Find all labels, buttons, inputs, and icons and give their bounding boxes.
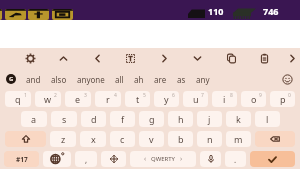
button[interactable]: Gboard menu (0, 69, 21, 89)
button[interactable]: Cursor control (101, 151, 126, 167)
button[interactable]: r (95, 91, 121, 107)
button[interactable]: b (168, 131, 193, 147)
staticText: i (223, 93, 226, 105)
button[interactable]: Backspace (255, 131, 295, 147)
button[interactable]: k (226, 111, 251, 127)
button[interactable]: u (183, 91, 208, 107)
staticText: G (9, 75, 14, 83)
staticText: 9 (259, 92, 262, 99)
button[interactable]: all (110, 69, 129, 89)
button[interactable]: m (226, 131, 251, 147)
staticText: 6 (172, 92, 175, 99)
button[interactable]: p (270, 91, 295, 107)
staticText: 3 (84, 92, 87, 99)
staticText: u (193, 93, 199, 105)
button[interactable]: Clipboard (247, 48, 281, 69)
staticText: › (180, 154, 183, 164)
staticText: t (136, 93, 140, 105)
staticText: d (91, 113, 97, 125)
staticText: anyone (77, 74, 105, 85)
button[interactable]: ah (129, 69, 149, 89)
staticText: ah (134, 74, 144, 85)
button[interactable]: x (80, 131, 106, 147)
staticText: a (31, 113, 37, 125)
button[interactable]: d (81, 111, 106, 127)
button[interactable]: n (197, 131, 222, 147)
staticText: 7 (201, 92, 204, 99)
button[interactable]: Inventory slot (5, 9, 26, 20)
staticText: z (61, 133, 66, 145)
staticText: y (164, 93, 169, 105)
button[interactable]: l (255, 111, 280, 127)
staticText: as (177, 74, 186, 85)
staticText: QWERTY (151, 155, 176, 163)
staticText: 2 (54, 92, 57, 99)
staticText: also (51, 74, 67, 85)
button[interactable]: Move cursor right (147, 48, 181, 69)
button[interactable]: t (125, 91, 150, 107)
button[interactable]: Copy (214, 48, 248, 69)
button[interactable]: Inventory slot (28, 9, 49, 20)
staticText: q (15, 93, 21, 105)
button[interactable]: as (172, 69, 191, 89)
staticText: c (120, 133, 125, 145)
staticText: 0 (288, 92, 291, 99)
button[interactable]: q (5, 91, 31, 107)
button[interactable]: ‹ (130, 151, 196, 167)
button[interactable]: f (110, 111, 135, 127)
staticText: #17 (16, 155, 28, 164)
button[interactable]: , (75, 151, 97, 167)
button[interactable]: More tools (285, 48, 300, 69)
button[interactable]: Text editing (113, 48, 147, 69)
button[interactable]: Emoji (274, 69, 300, 89)
button[interactable]: Enter (250, 151, 295, 167)
button[interactable]: Settings (13, 48, 47, 69)
staticText: 4 (114, 92, 117, 99)
button[interactable]: w (35, 91, 61, 107)
button[interactable]: g (139, 111, 164, 127)
button[interactable]: Inventory slot (52, 9, 73, 20)
staticText: f (121, 113, 125, 125)
button[interactable]: . (225, 151, 246, 167)
staticText: v (149, 133, 154, 145)
staticText: 8 (230, 92, 233, 99)
button[interactable]: y (154, 91, 179, 107)
button[interactable]: Inventory slot (0, 9, 2, 20)
button[interactable]: Shift (5, 131, 46, 147)
staticText: r (106, 93, 110, 105)
staticText: p (280, 93, 286, 105)
button[interactable]: #17 (4, 151, 39, 167)
staticText: b (178, 133, 184, 145)
button[interactable]: c (110, 131, 135, 147)
button[interactable]: s (51, 111, 77, 127)
button[interactable]: Move cursor left (80, 48, 114, 69)
staticText: o (251, 93, 257, 105)
button[interactable]: also (46, 69, 72, 89)
button[interactable]: a (21, 111, 47, 127)
staticText: all (115, 74, 124, 85)
button[interactable]: v (139, 131, 164, 147)
staticText: s (62, 113, 67, 125)
staticText: 110 (208, 5, 224, 16)
button[interactable]: h (168, 111, 193, 127)
staticText: w (44, 93, 52, 105)
button[interactable]: and (21, 69, 46, 89)
button[interactable]: Expand toolbar (46, 48, 80, 69)
staticText: , (85, 154, 88, 165)
button[interactable]: z (50, 131, 76, 147)
button[interactable]: j (197, 111, 222, 127)
button[interactable]: anyone (72, 69, 110, 89)
button[interactable]: are (149, 69, 172, 89)
staticText: x (91, 133, 96, 145)
staticText: 1 (24, 92, 27, 99)
staticText: are (154, 74, 167, 85)
staticText: 5 (143, 92, 146, 99)
button[interactable]: Switch language (43, 151, 71, 167)
button[interactable]: o (241, 91, 266, 107)
button[interactable]: e (65, 91, 91, 107)
button[interactable]: Voice input (200, 151, 221, 167)
staticText: and (26, 74, 41, 85)
button[interactable]: Collapse toolbar (180, 48, 214, 69)
button[interactable]: i (212, 91, 237, 107)
button[interactable]: any (191, 69, 215, 89)
